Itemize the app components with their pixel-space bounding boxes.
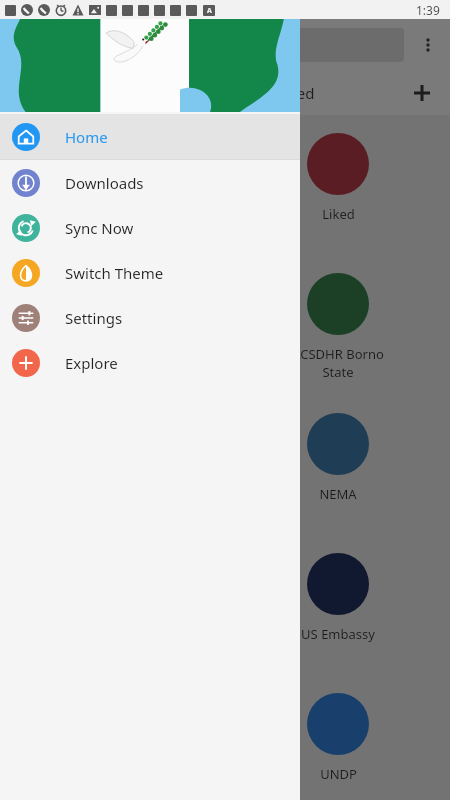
button[interactable] <box>56 28 404 62</box>
staticText: Switch Theme <box>65 263 164 283</box>
button[interactable]: Liked <box>225 115 450 255</box>
button[interactable]: NEMA <box>225 395 450 535</box>
button[interactable]: UNDP <box>225 675 450 800</box>
staticText: ACSDHR Borno State <box>292 345 384 381</box>
staticText: Downloads <box>65 173 144 193</box>
button[interactable]: More options <box>406 23 450 67</box>
staticText: Settings <box>65 308 123 328</box>
staticText: Sync Now <box>65 218 134 238</box>
staticText: US Embassy <box>301 625 375 643</box>
staticText: Home <box>65 127 108 147</box>
button[interactable]: ACSDHR Borno State <box>225 255 450 395</box>
staticText: Liked <box>322 205 355 223</box>
button[interactable]: Liked <box>197 71 394 115</box>
button[interactable]: Sync Now <box>0 205 300 250</box>
staticText: 1:39 <box>416 2 440 18</box>
button[interactable]: Add <box>394 71 450 115</box>
button[interactable]: Home <box>0 114 300 159</box>
button[interactable]: Downloads <box>0 160 300 205</box>
staticText: Explore <box>65 353 118 373</box>
button[interactable]: Explore <box>0 340 300 385</box>
button[interactable]: Switch Theme <box>0 250 300 295</box>
staticText: A <box>207 6 212 16</box>
button[interactable]: Agencies <box>0 71 197 115</box>
button[interactable]: Nigeria <box>0 255 225 395</box>
button[interactable]: US Embassy <box>225 535 450 675</box>
staticText: Nigeria <box>91 345 136 363</box>
staticText: NEMA <box>319 485 357 503</box>
button[interactable]: 100 <box>0 115 225 255</box>
button[interactable]: Settings <box>0 295 300 340</box>
staticText: Agencies <box>67 83 131 103</box>
staticText: UNDP <box>320 765 357 783</box>
staticText: Liked <box>277 83 315 103</box>
